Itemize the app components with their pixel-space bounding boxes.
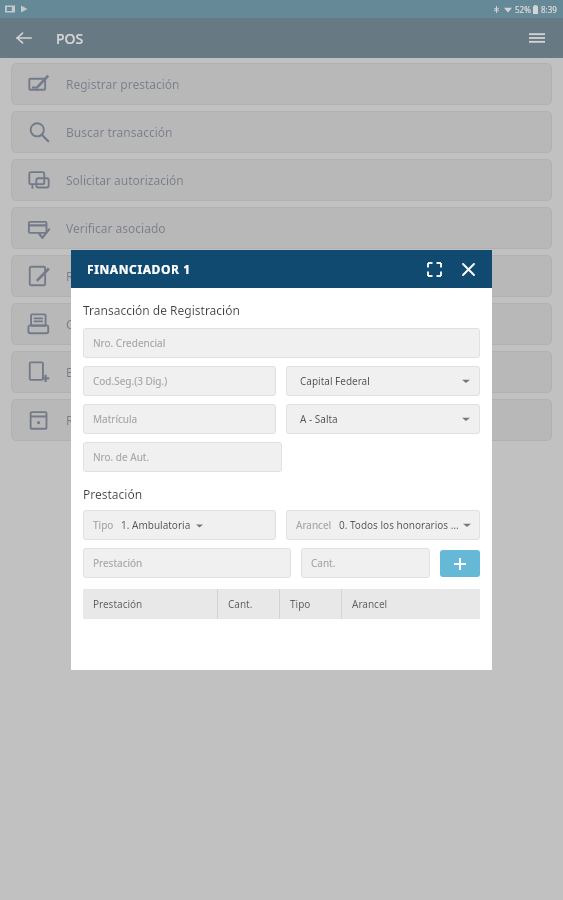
staticText: Transacción de Registración (83, 302, 240, 318)
button[interactable]: Cierre de lote (11, 303, 552, 345)
staticText: A - Salta (300, 412, 338, 426)
staticText: Cant. (228, 597, 253, 611)
button[interactable]: Matrícula (83, 404, 276, 434)
button[interactable]: Cant. (301, 548, 430, 578)
button[interactable]: Prestación (83, 548, 291, 578)
staticText: Nro. de Aut. (93, 450, 150, 464)
button[interactable]: Solicitar autorización (11, 159, 552, 201)
staticText: Matrícula (93, 412, 138, 426)
staticText: 1. Ambulatoria (121, 518, 191, 532)
button[interactable]: Nro. de Aut. (83, 442, 282, 472)
button[interactable]: Menu (521, 22, 553, 54)
button[interactable]: Nro. Credencial (83, 328, 480, 358)
button[interactable]: Reimprimir (11, 255, 552, 297)
staticText: 8:39 (541, 4, 557, 15)
staticText: Tipo (93, 518, 114, 532)
staticText: 0. Todos los honorarios qu... (339, 518, 460, 532)
staticText: Prestación (93, 597, 143, 611)
staticText: Nro. Credencial (93, 336, 166, 350)
staticText: FINANCIADOR 1 (87, 261, 191, 277)
button[interactable]: Close (454, 255, 482, 283)
staticText: Arancel (296, 518, 332, 532)
staticText: Prestación (83, 486, 143, 502)
staticText: Capital Federal (300, 374, 370, 388)
button[interactable]: Tipo (83, 510, 276, 540)
button[interactable]: A - Salta (286, 404, 480, 434)
staticText: 52% (515, 4, 531, 15)
button[interactable]: Verificar asociado (11, 207, 552, 249)
staticText: Cierre de lote (66, 316, 142, 332)
button[interactable]: Enviar lote (11, 351, 552, 393)
staticText: Solicitar autorización (66, 172, 184, 188)
staticText: POS (56, 29, 84, 48)
staticText: Verificar asociado (66, 220, 166, 236)
staticText: Cod.Seg.(3 Dig.) (93, 374, 168, 388)
button[interactable]: Maximize (420, 255, 448, 283)
staticText: Cant. (311, 556, 336, 570)
staticText: Enviar lote (66, 364, 126, 380)
staticText: Arancel (352, 597, 388, 611)
button[interactable]: Registrar prestación (11, 63, 552, 105)
button[interactable]: Agregar (440, 550, 480, 577)
button[interactable]: Buscar transacción (11, 111, 552, 153)
staticText: Reportes (66, 412, 117, 428)
button[interactable]: Back (8, 22, 40, 54)
staticText: Reimprimir (66, 268, 130, 284)
button[interactable]: Reportes (11, 399, 552, 441)
staticText: Registrar prestación (66, 76, 180, 92)
staticText: Buscar transacción (66, 124, 173, 140)
button[interactable]: Arancel (286, 510, 480, 540)
staticText: Tipo (290, 597, 311, 611)
button[interactable]: Cod.Seg.(3 Dig.) (83, 366, 276, 396)
button[interactable]: Capital Federal (286, 366, 480, 396)
staticText: Prestación (93, 556, 143, 570)
